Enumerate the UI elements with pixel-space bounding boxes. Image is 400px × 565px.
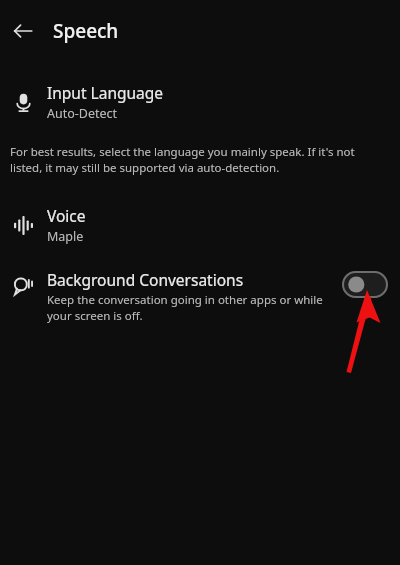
button[interactable]: Back [4,12,42,50]
staticText: Keep the conversation going in other app… [47,292,334,323]
staticText: Input Language [47,82,164,103]
button[interactable]: Background Conversations [0,269,400,323]
staticText: Voice [47,205,86,226]
button[interactable]: Voice [0,201,400,249]
staticText: Speech [53,18,119,44]
button[interactable]: Background Conversations toggle [342,271,388,298]
staticText: Maple [47,228,84,245]
staticText: Background Conversations [47,269,244,290]
staticText: For best results, select the language yo… [10,144,388,175]
staticText: Auto-Detect [47,105,118,122]
button[interactable]: Input Language [0,78,400,126]
